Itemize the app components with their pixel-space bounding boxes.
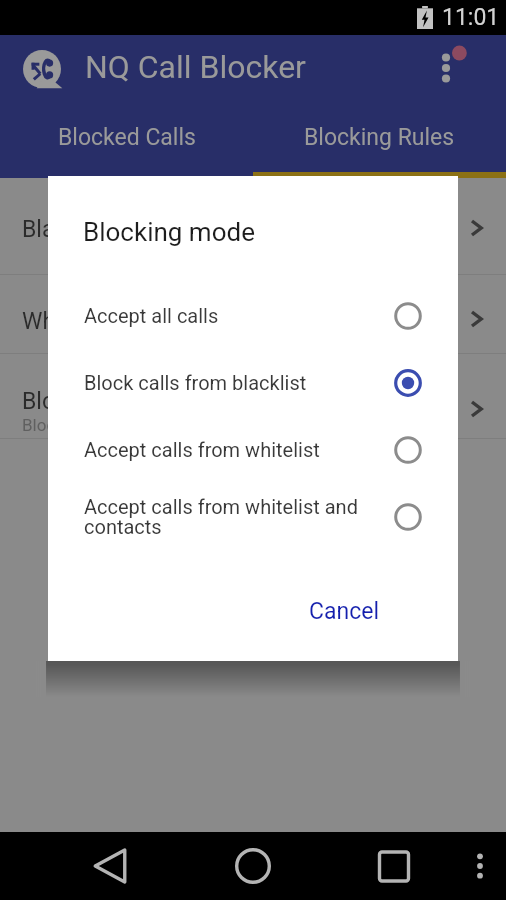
- staticText: Blocking mode: [83, 217, 255, 247]
- staticText: Cancel: [309, 598, 380, 625]
- button[interactable]: Accept all calls: [48, 282, 458, 349]
- button[interactable]: Menu: [456, 832, 506, 900]
- staticText: Accept calls from whitelist: [84, 438, 374, 461]
- staticText: Block calls from blacklist: [22, 415, 211, 435]
- button[interactable]: Blacklist: [0, 178, 506, 274]
- staticText: Accept all calls: [84, 304, 374, 327]
- staticText: NQ Call Blocker: [85, 48, 306, 86]
- button[interactable]: Blocked Calls: [0, 102, 253, 178]
- staticText: Accept calls from whitelist and contacts: [84, 495, 374, 539]
- button[interactable]: More options: [438, 35, 506, 102]
- button[interactable]: Home: [225, 838, 281, 894]
- staticText: Whitelist: [22, 308, 111, 335]
- button[interactable]: Accept calls from whitelist: [48, 416, 458, 483]
- staticText: Block calls from blacklist: [84, 371, 374, 394]
- staticText: Blocking Rules: [304, 124, 455, 151]
- staticText: Blacklist: [22, 216, 109, 243]
- staticText: 11:01: [442, 4, 500, 31]
- button[interactable]: Recent apps: [366, 838, 422, 894]
- button[interactable]: Blocking Rules: [253, 102, 506, 178]
- button[interactable]: Accept calls from whitelist and contacts: [48, 483, 458, 550]
- button[interactable]: Block calls from blacklist: [48, 349, 458, 416]
- button[interactable]: Back: [82, 838, 138, 894]
- staticText: Blocking mode: [22, 388, 175, 415]
- button[interactable]: Blocking mode: [0, 354, 506, 438]
- button[interactable]: Cancel: [297, 590, 392, 633]
- staticText: Blocked Calls: [58, 124, 196, 151]
- button[interactable]: Whitelist: [0, 275, 506, 353]
